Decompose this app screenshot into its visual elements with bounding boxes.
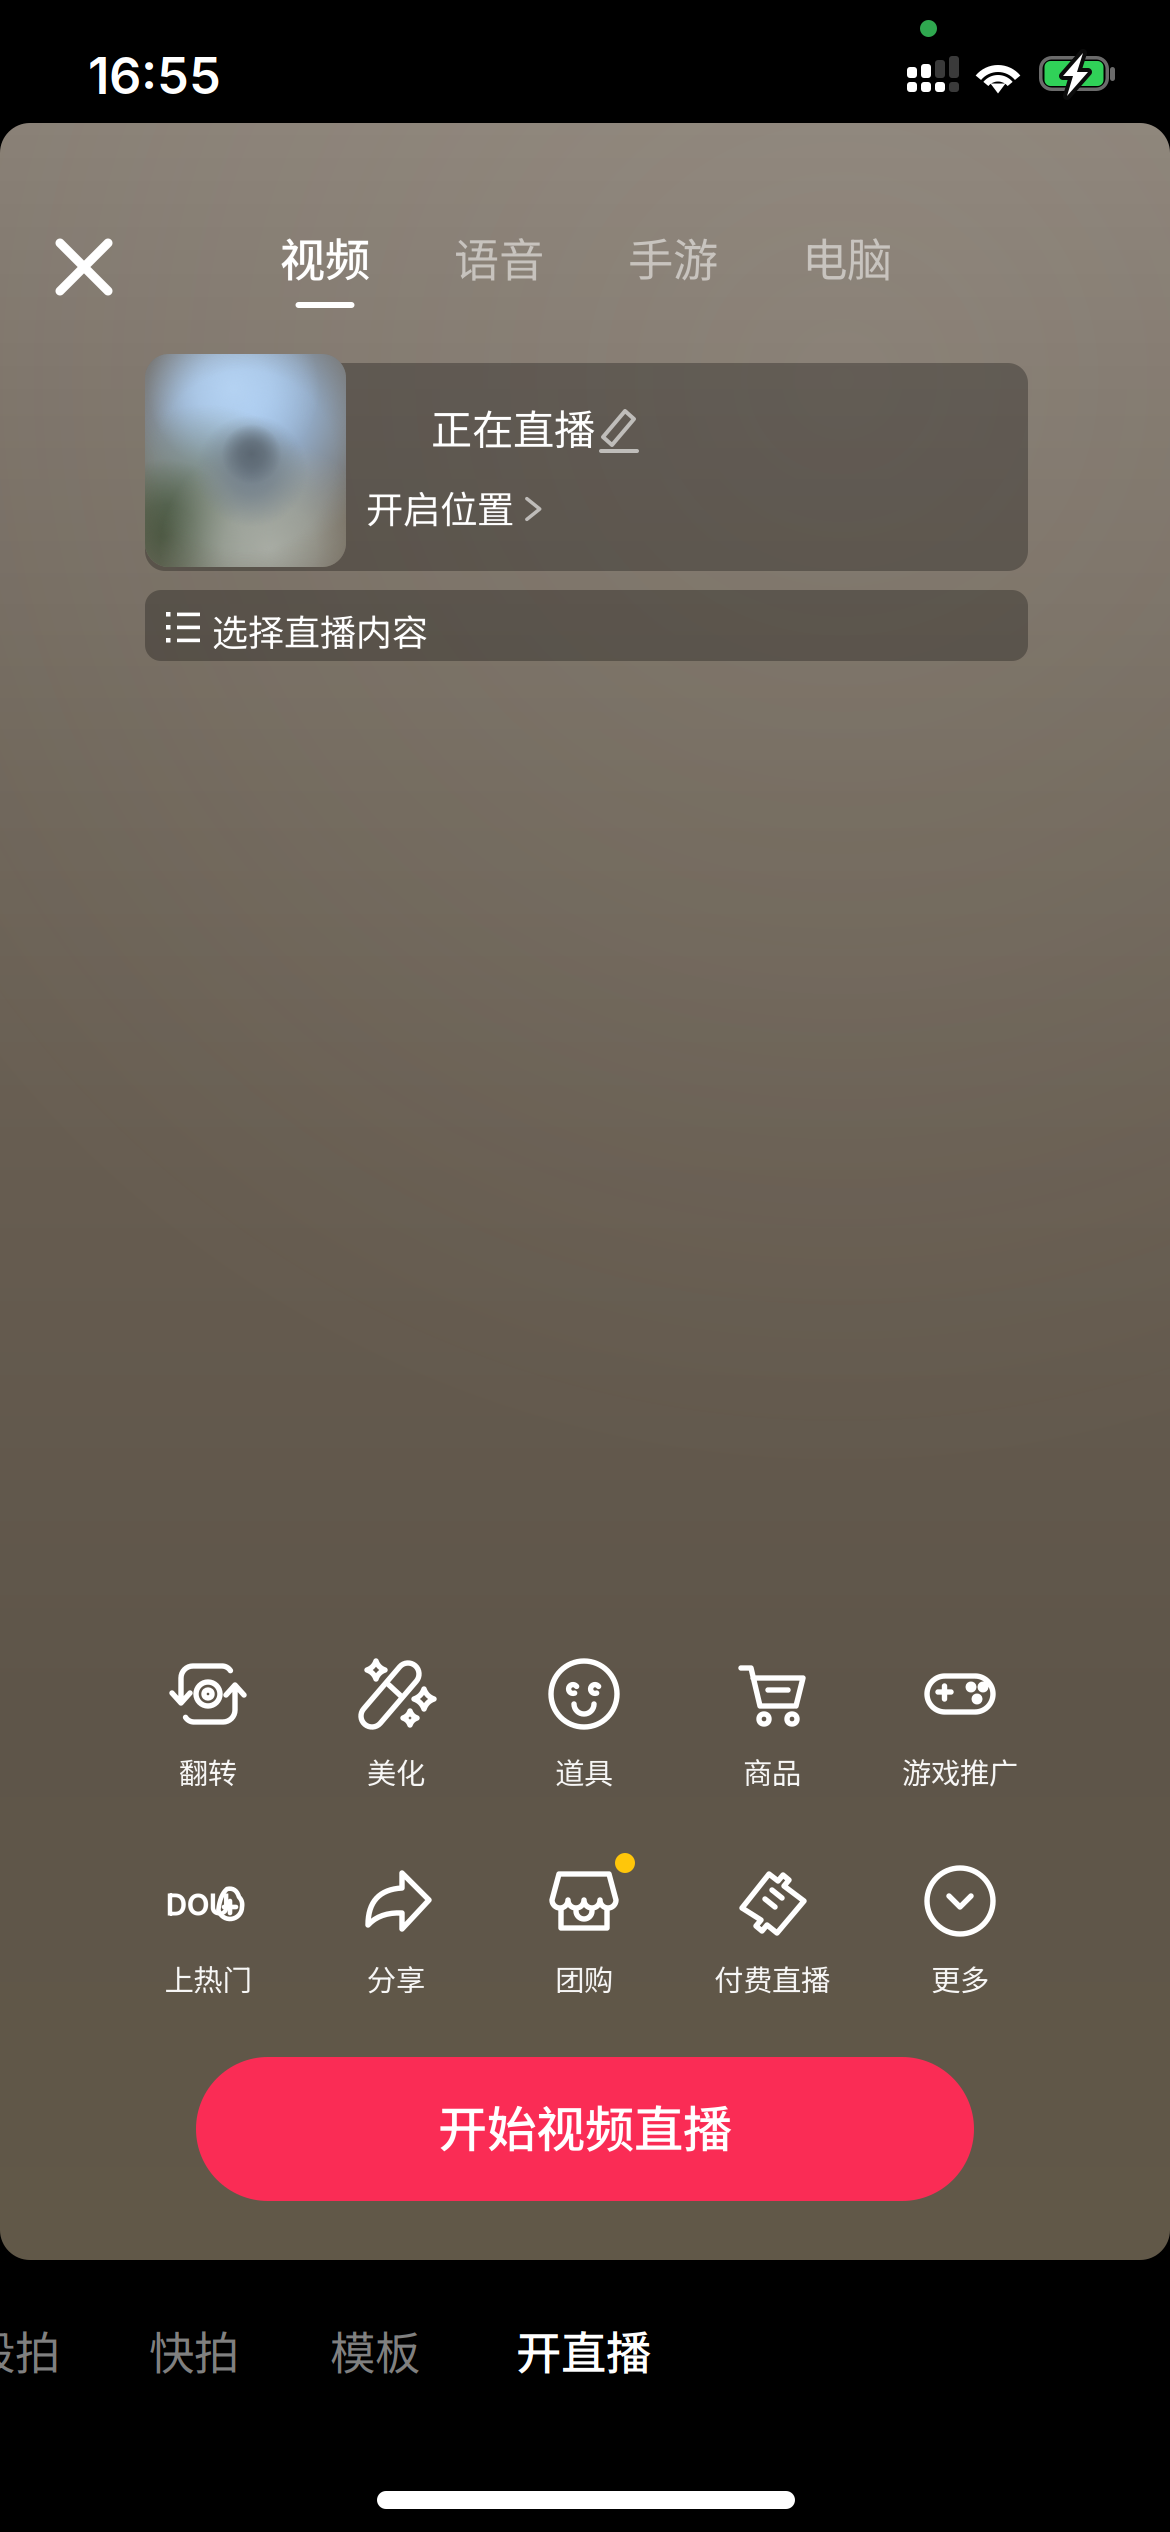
staticText: 正在直播 — [431, 397, 595, 457]
button[interactable]: 模板 — [330, 2317, 438, 2413]
button[interactable]: 道具 — [490, 1656, 678, 1806]
staticText: 商品 — [743, 1750, 801, 1792]
staticText: 游戏推广 — [902, 1750, 1018, 1792]
button[interactable]: 分享 — [302, 1863, 490, 2013]
button[interactable]: 商品 — [678, 1656, 866, 1806]
button[interactable]: 快拍 — [149, 2317, 257, 2413]
button[interactable]: 付费直播 — [678, 1863, 866, 2013]
button[interactable]: DOU — [114, 1863, 302, 2013]
staticText: 分享 — [367, 1957, 425, 1999]
button[interactable]: 视频 — [238, 224, 412, 344]
button[interactable]: 开始视频直播 — [196, 2057, 974, 2201]
button[interactable]: 正在直播 — [145, 363, 1028, 571]
staticText: 团购 — [555, 1957, 613, 1999]
staticText: 手游 — [628, 224, 718, 290]
staticText: 上热门 — [164, 1957, 251, 1999]
button[interactable]: 美化 — [302, 1656, 490, 1806]
button[interactable]: 分段拍 — [0, 2317, 88, 2413]
staticText: 付费直播 — [714, 1957, 830, 1999]
button[interactable]: 手游 — [586, 224, 760, 344]
button[interactable]: 语音 — [412, 224, 586, 344]
staticText: 分段拍 — [0, 2317, 60, 2383]
staticText: 道具 — [555, 1750, 613, 1792]
button[interactable]: 开直播 — [516, 2317, 679, 2413]
staticText: 模板 — [330, 2317, 420, 2383]
staticText: 电脑 — [802, 224, 892, 290]
button[interactable]: 关闭 — [29, 214, 139, 320]
button[interactable]: 更多 — [866, 1863, 1054, 2013]
staticText: 16:55 — [88, 45, 221, 106]
staticText: 选择直播内容 — [212, 604, 428, 656]
staticText: 快拍 — [149, 2317, 239, 2383]
staticText: 开启位置 — [366, 480, 514, 534]
staticText: 美化 — [367, 1750, 425, 1792]
button[interactable]: 电脑 — [760, 224, 934, 344]
staticText: DOU — [166, 1887, 230, 1922]
button[interactable]: 游戏推广 — [866, 1656, 1054, 1806]
button[interactable]: 选择直播内容 — [145, 590, 1028, 661]
button[interactable]: 团购 — [490, 1863, 678, 2013]
staticText: 语音 — [454, 224, 544, 290]
staticText: 开直播 — [516, 2317, 651, 2383]
staticText: 翻转 — [179, 1750, 237, 1792]
button[interactable]: 翻转 — [114, 1656, 302, 1806]
staticText: 更多 — [931, 1957, 989, 1999]
staticText: 视频 — [280, 224, 370, 290]
staticText: 开始视频直播 — [438, 2090, 732, 2161]
